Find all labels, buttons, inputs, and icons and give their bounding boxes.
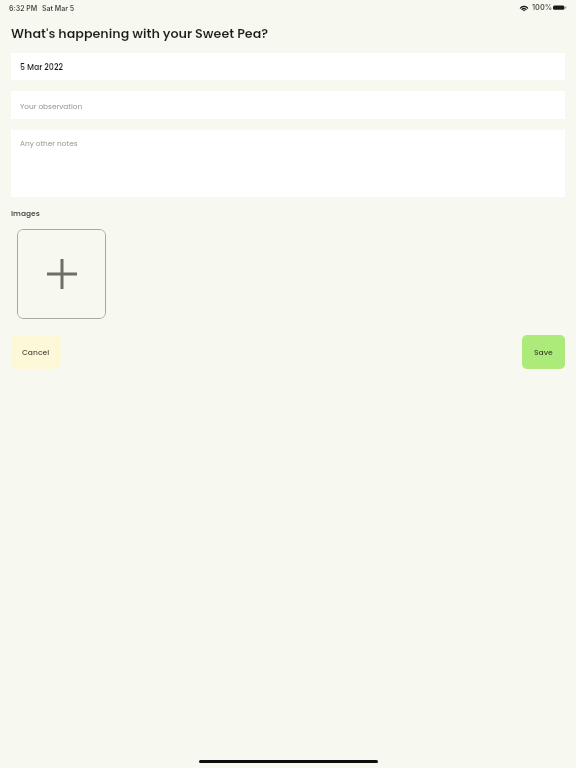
button[interactable]: Cancel	[11, 335, 61, 369]
staticText: Any other notes	[20, 138, 78, 148]
staticText: Save	[534, 347, 553, 358]
button[interactable]: Any other notes	[11, 130, 565, 197]
button[interactable]: Save	[522, 335, 565, 369]
staticText: 6:32 PM	[9, 4, 38, 12]
staticText: Your observation	[20, 101, 83, 111]
staticText: Cancel	[22, 347, 50, 358]
staticText: Images	[11, 208, 40, 218]
staticText: Sat Mar 5	[42, 4, 75, 12]
button[interactable]: 5 Mar 2022	[11, 53, 565, 80]
staticText: 100%	[532, 3, 553, 12]
staticText: 5 Mar 2022	[20, 62, 63, 73]
staticText: What's happening with your Sweet Pea?	[11, 25, 269, 43]
button[interactable]: Add image	[17, 229, 106, 319]
button[interactable]: Your observation	[11, 91, 565, 119]
